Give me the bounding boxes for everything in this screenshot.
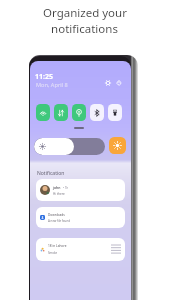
button[interactable]: Flashlight <box>108 104 122 121</box>
staticText: 11:25 <box>35 72 53 82</box>
button[interactable]: Wi-Fi <box>36 104 50 121</box>
button[interactable]: Downloads <box>36 207 125 228</box>
staticText: Smoke <box>48 251 58 255</box>
staticText: Organized your <box>43 5 127 21</box>
button[interactable]: Mobile data <box>54 104 68 121</box>
button[interactable]: Open settings <box>109 137 126 154</box>
staticText: Downloads <box>48 213 65 217</box>
staticText: • 1h <box>63 186 69 190</box>
button[interactable]: Bluetooth <box>90 104 104 121</box>
staticText: 18 in Lahore <box>48 244 67 248</box>
staticText: Notification <box>37 170 65 177</box>
button[interactable]: john <box>36 179 125 201</box>
staticText: john <box>53 185 61 190</box>
staticText: Mon, April 8 <box>36 81 68 89</box>
button[interactable]: Brightness <box>34 138 105 155</box>
button[interactable]: Settings <box>105 80 111 86</box>
button[interactable]: 18 in Lahore <box>36 238 125 261</box>
button[interactable]: Power <box>116 80 122 86</box>
staticText: A new file found <box>48 219 70 223</box>
staticText: notifications <box>51 21 118 37</box>
button[interactable]: Location <box>72 104 86 121</box>
staticText: Hi there <box>53 192 65 196</box>
